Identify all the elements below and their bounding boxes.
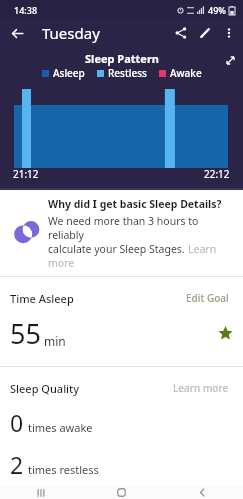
staticText: We need more than 3 hours to reliably — [48, 214, 231, 242]
staticText: Tuesday — [42, 23, 100, 43]
staticText: 49% — [208, 4, 226, 16]
staticText: Sleep Pattern — [85, 51, 159, 66]
staticText: more — [48, 256, 75, 270]
staticText: Learn more — [173, 381, 229, 395]
staticText: Time Asleep — [10, 291, 74, 306]
button[interactable]: Back — [162, 486, 243, 499]
button[interactable]: Back — [6, 22, 28, 44]
staticText: min — [44, 333, 66, 349]
staticText: 14:38 — [14, 4, 38, 16]
button[interactable]: Home — [81, 486, 162, 499]
button[interactable]: Recent apps — [0, 486, 81, 499]
staticText: times restless — [28, 462, 99, 477]
button[interactable]: Why did I get basic Sleep Details? — [0, 190, 243, 276]
staticText: calculate your Sleep Stages. — [48, 242, 188, 256]
button[interactable]: Share — [169, 21, 193, 45]
staticText: 2 — [10, 449, 24, 480]
staticText: Restless — [108, 66, 147, 80]
staticText: Awake — [170, 66, 202, 80]
staticText: Why did I get basic Sleep Details? — [48, 197, 222, 211]
staticText: 0 — [10, 407, 24, 438]
staticText: 55 — [10, 315, 41, 352]
staticText: times awake — [28, 420, 93, 435]
button[interactable]: Edit — [193, 21, 217, 45]
button[interactable]: More options — [217, 21, 241, 45]
button[interactable]: Edit Goal — [182, 287, 233, 309]
staticText: Edit Goal — [186, 291, 229, 305]
staticText: Learn — [188, 242, 217, 256]
button[interactable]: Learn more — [169, 377, 233, 399]
staticText: 21:12 — [13, 167, 39, 181]
staticText: Sleep Quality — [10, 381, 80, 396]
staticText: 22:12 — [204, 167, 230, 181]
staticText: Asleep — [53, 66, 85, 80]
button[interactable]: Expand chart — [219, 49, 241, 71]
